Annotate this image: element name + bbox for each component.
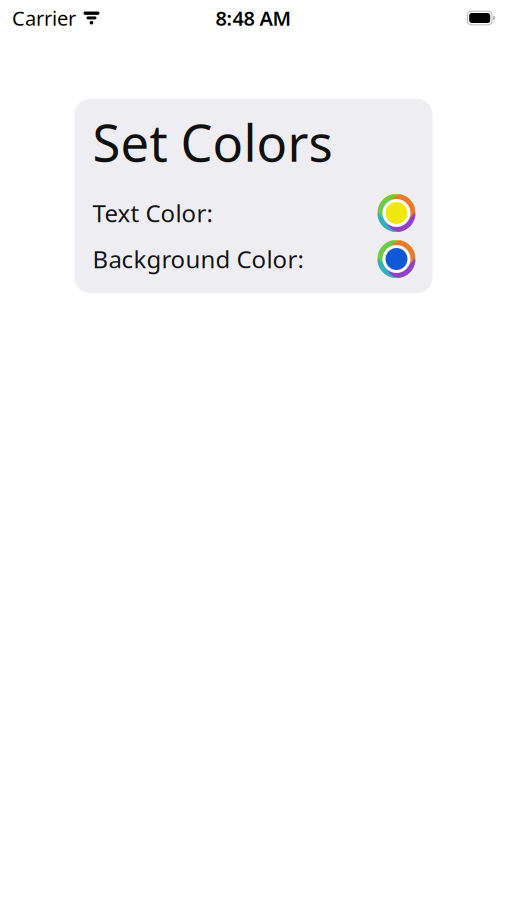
staticText: Carrier	[12, 5, 76, 31]
staticText: Background Color:	[92, 243, 303, 275]
button[interactable]: Background Color:	[92, 239, 415, 279]
staticText: 8:48 AM	[215, 5, 291, 31]
staticText: Text Color:	[92, 197, 212, 229]
button[interactable]: Text Color:	[92, 193, 415, 233]
staticText: Set Colors	[92, 108, 332, 176]
